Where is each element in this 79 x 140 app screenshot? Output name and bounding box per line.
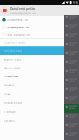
button[interactable]: Doručená pošta — [0, 46, 64, 55]
button[interactable]: K odeslání — [0, 107, 64, 116]
staticText: DORUČENÁ POŠTA — [3, 41, 25, 44]
button[interactable]: ulozenky@gmail.com — [0, 16, 64, 23]
staticText: Doručená pošta — [3, 49, 21, 52]
staticText: Doručená pošta — [10, 7, 35, 11]
staticText: nikol.krej@gmail.com — [7, 33, 30, 36]
staticText: Chaty — [3, 92, 10, 95]
button[interactable]: Prioritní pošta — [0, 55, 64, 64]
staticText: S hvězdičkou — [3, 74, 18, 78]
button[interactable]: Koncepty — [0, 116, 64, 125]
button[interactable]: Důležité — [0, 80, 64, 89]
button[interactable]: Chaty — [0, 89, 64, 98]
staticText: Prioritní pošta — [3, 58, 20, 61]
button[interactable]: mladenec@gmail.com — [0, 23, 64, 31]
button[interactable]: Odeslaná pošta — [0, 98, 64, 107]
staticText: 16:42 — [72, 1, 77, 4]
staticText: VŠECHNY ZPRÁVY — [3, 66, 20, 69]
button[interactable]: nikol.krej@gmail.com — [0, 31, 64, 38]
staticText: mladenec@gmail.com — [7, 26, 29, 29]
staticText: Odeslaná pošta — [3, 101, 21, 104]
button[interactable]: S hvězdičkou — [0, 71, 64, 80]
staticText: Důležité — [3, 83, 13, 87]
staticText: ulozenkyzbozi@gmail.com — [10, 11, 36, 14]
staticText: Koncepty — [3, 119, 14, 122]
staticText: ulozenky@gmail.com — [7, 18, 28, 21]
staticText: K odeslání — [3, 110, 16, 113]
